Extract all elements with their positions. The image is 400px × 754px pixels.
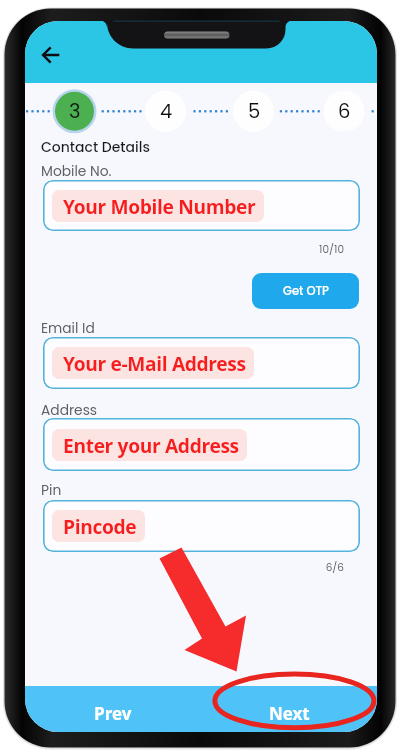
staticText: Enter your Address [63,432,239,458]
button[interactable]: 3 [53,89,97,133]
staticText: Pin [41,481,62,500]
staticText: Next [269,702,310,725]
button[interactable]: Your Mobile Number [43,180,360,231]
button[interactable]: 5 [232,89,276,133]
button[interactable]: 4 [144,89,188,133]
staticText: Prev [94,702,132,725]
button[interactable]: Back [33,37,69,73]
button[interactable]: Pincode [43,500,360,552]
button[interactable]: Prev [25,686,201,732]
staticText: Your Mobile Number [63,193,256,219]
staticText: Get OTP [283,283,329,299]
button[interactable]: 6 [322,89,366,133]
staticText: 3 [69,98,81,125]
staticText: Address [41,401,98,420]
staticText: 10/10 [25,242,344,257]
staticText: 6 [338,98,351,125]
button[interactable]: Next [201,686,377,732]
staticText: Your e-Mail Address [63,350,246,376]
staticText: Pincode [63,513,137,539]
staticText: 4 [160,98,173,125]
staticText: 6/6 [25,560,344,575]
button[interactable]: Enter your Address [43,418,360,471]
staticText: 5 [248,98,261,125]
staticText: Email Id [41,319,95,338]
button[interactable]: Get OTP [252,273,359,309]
staticText: Mobile No. [41,162,112,181]
button[interactable]: Your e-Mail Address [43,337,360,389]
staticText: Contact Details [41,137,150,157]
